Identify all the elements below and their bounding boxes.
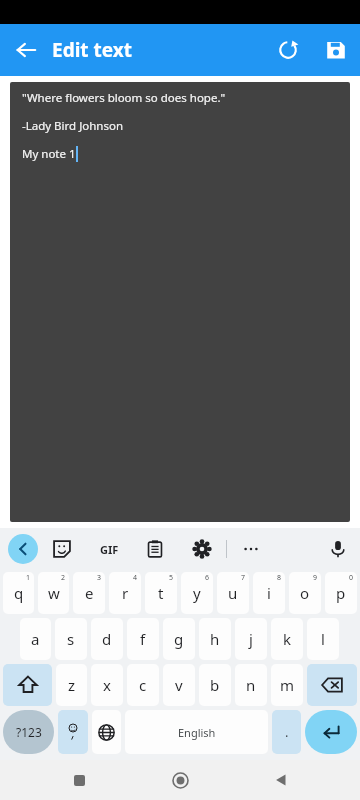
button[interactable]: "Where flowers bloom so does hope." (10, 82, 350, 522)
staticText: 0 (349, 573, 354, 583)
staticText: ?123 (16, 724, 42, 740)
staticText: 7 (241, 573, 246, 583)
button[interactable]: e (73, 572, 105, 614)
staticText: e (85, 583, 94, 603)
button[interactable]: q (3, 572, 34, 614)
staticText: 5 (169, 573, 174, 583)
button[interactable]: English (125, 710, 268, 754)
button[interactable]: Refresh (264, 26, 312, 74)
button[interactable]: ?123 (3, 710, 54, 754)
button[interactable]: Change language (92, 710, 121, 754)
button[interactable]: h (199, 618, 231, 660)
staticText: r (122, 583, 129, 603)
button[interactable]: Stickers (38, 528, 86, 570)
button[interactable]: m (271, 664, 303, 706)
button[interactable]: s (55, 618, 87, 660)
button[interactable]: Recent apps (57, 760, 101, 800)
staticText: u (228, 583, 238, 603)
staticText: k (283, 629, 292, 649)
staticText: f (140, 629, 146, 649)
staticText: 6 (205, 573, 210, 583)
button[interactable]: u (217, 572, 249, 614)
button[interactable]: w (38, 572, 69, 614)
button[interactable]: n (235, 664, 267, 706)
staticText: s (67, 629, 75, 649)
staticText: . (285, 723, 289, 741)
staticText: c (139, 675, 147, 695)
button[interactable]: k (271, 618, 303, 660)
staticText: t (158, 583, 164, 603)
button[interactable]: Backspace (307, 664, 357, 706)
staticText: GIF (100, 542, 119, 557)
staticText: y (193, 583, 201, 603)
button[interactable]: o (289, 572, 321, 614)
button[interactable]: v (163, 664, 195, 706)
staticText: v (175, 675, 183, 695)
staticText: g (174, 629, 184, 649)
button[interactable]: t (145, 572, 177, 614)
button[interactable]: GIF (86, 528, 132, 570)
staticText: 3 (97, 573, 102, 583)
button[interactable]: d (91, 618, 123, 660)
staticText: "Where flowers bloom so does hope." (22, 90, 226, 106)
button[interactable]: b (199, 664, 231, 706)
button[interactable]: z (56, 664, 87, 706)
button[interactable]: Home (158, 760, 202, 800)
staticText: a (31, 629, 40, 649)
staticText: b (210, 675, 220, 695)
button[interactable]: x (91, 664, 123, 706)
button[interactable]: c (127, 664, 159, 706)
button[interactable]: More options (227, 528, 275, 570)
button[interactable]: Voice input (316, 528, 360, 570)
staticText: 9 (313, 573, 318, 583)
button[interactable]: y (181, 572, 213, 614)
staticText: q (14, 583, 24, 603)
button[interactable]: Expand toolbar (8, 534, 38, 564)
staticText: j (249, 629, 253, 649)
button[interactable]: Settings (178, 528, 226, 570)
button[interactable]: Clipboard (132, 528, 178, 570)
button[interactable]: g (163, 618, 195, 660)
button[interactable]: Enter (305, 710, 357, 754)
button[interactable]: j (235, 618, 267, 660)
staticText: 4 (133, 573, 138, 583)
button[interactable]: Back (259, 760, 303, 800)
staticText: i (267, 583, 271, 603)
button[interactable]: i (253, 572, 285, 614)
button[interactable]: p (325, 572, 357, 614)
staticText: 8 (277, 573, 282, 583)
button[interactable]: Shift (3, 664, 52, 706)
staticText: z (68, 675, 76, 695)
staticText: Edit text (52, 37, 132, 63)
staticText: o (300, 583, 310, 603)
staticText: x (103, 675, 111, 695)
staticText: 1 (26, 573, 31, 583)
staticText: n (246, 675, 256, 695)
staticText: l (321, 629, 325, 649)
button[interactable]: l (307, 618, 339, 660)
staticText: p (336, 583, 346, 603)
button[interactable]: Save (312, 26, 360, 74)
staticText: English (178, 725, 216, 740)
staticText: w (48, 583, 60, 603)
button[interactable]: f (127, 618, 159, 660)
button[interactable]: . (272, 710, 301, 754)
staticText: h (210, 629, 220, 649)
staticText: 2 (61, 573, 66, 583)
button[interactable]: Back (0, 24, 52, 76)
button[interactable]: a (20, 618, 51, 660)
button[interactable]: Emoji (58, 710, 88, 754)
staticText: d (102, 629, 112, 649)
button[interactable]: r (109, 572, 141, 614)
staticText: m (280, 675, 295, 695)
staticText: My note 1 (22, 146, 76, 162)
staticText: -Lady Bird Johnson (22, 118, 124, 134)
